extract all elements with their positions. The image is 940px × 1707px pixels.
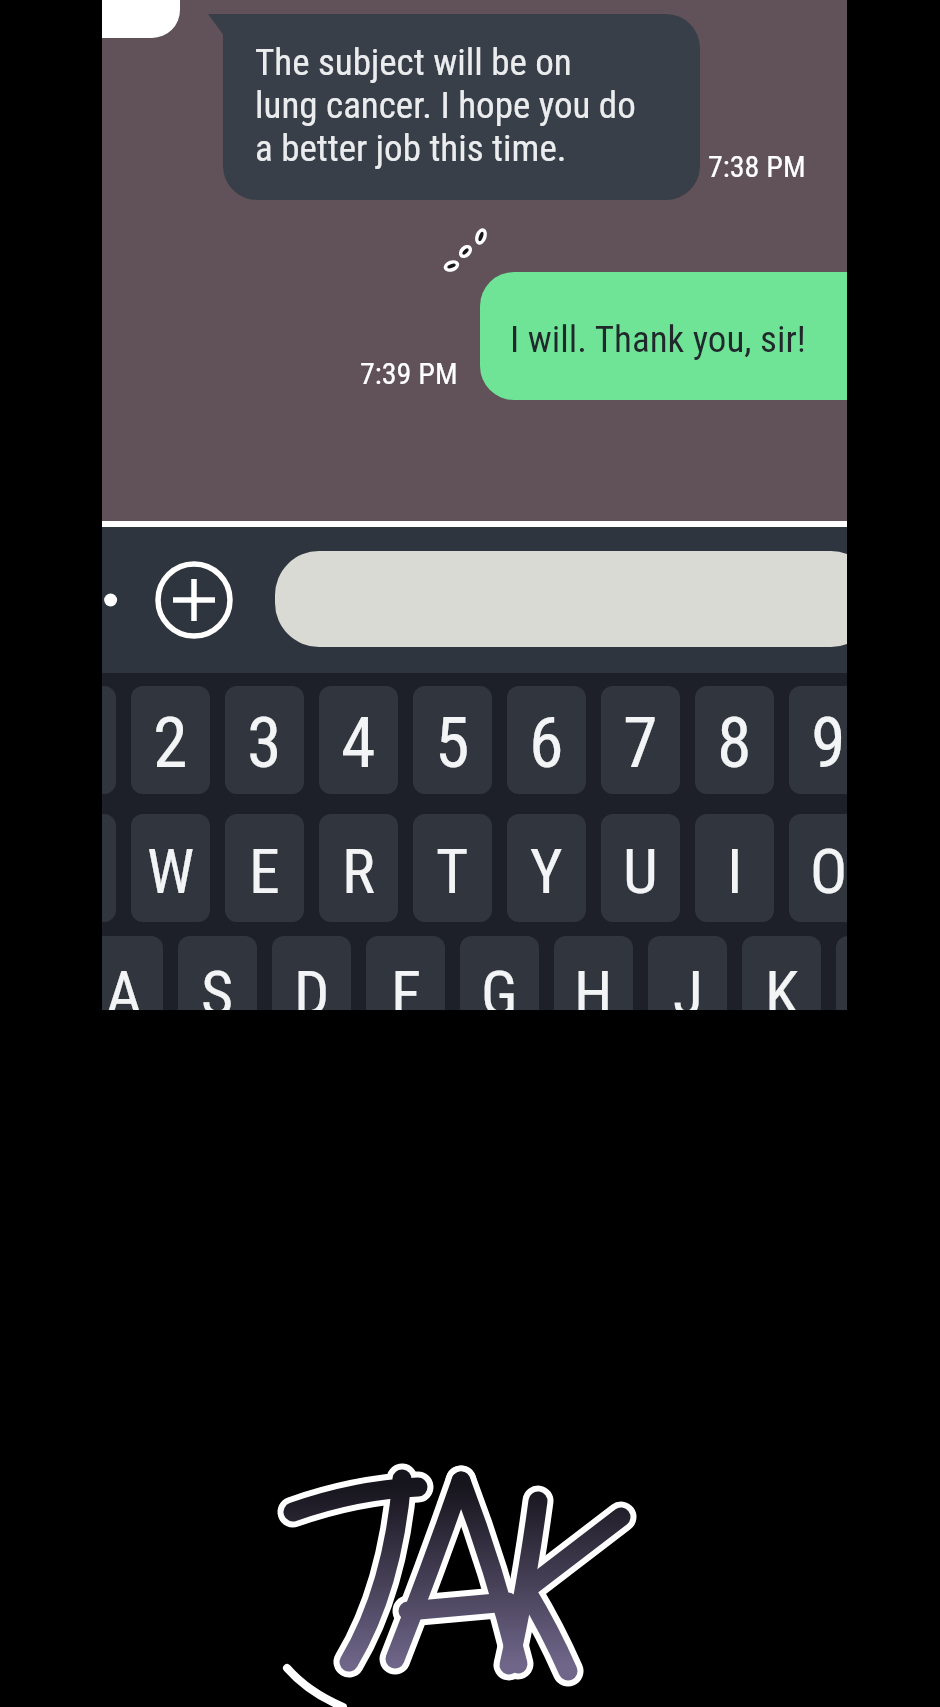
button[interactable]: 9 bbox=[789, 686, 847, 794]
button[interactable]: A bbox=[102, 936, 163, 1010]
button[interactable]: J bbox=[648, 936, 727, 1010]
staticText: R bbox=[342, 835, 375, 908]
button[interactable]: W bbox=[131, 814, 210, 922]
staticText: 7:39 PM bbox=[360, 356, 458, 391]
button[interactable]: K bbox=[742, 936, 821, 1010]
button[interactable]: I will. Thank you, sir! bbox=[480, 272, 847, 400]
staticText: I will. Thank you, sir! bbox=[510, 318, 806, 361]
staticText: G bbox=[481, 957, 518, 1010]
staticText: Y bbox=[530, 835, 563, 908]
staticText: 4 bbox=[341, 702, 376, 784]
staticText: T bbox=[436, 835, 469, 908]
button[interactable]: F bbox=[366, 936, 445, 1010]
button[interactable]: The subject will be on lung cancer. I ho… bbox=[223, 14, 700, 200]
staticText: 8 bbox=[717, 702, 752, 784]
button[interactable]: T bbox=[413, 814, 492, 922]
button[interactable]: 6 bbox=[507, 686, 586, 794]
staticText: I bbox=[727, 835, 743, 908]
staticText: O bbox=[810, 835, 847, 908]
staticText: 2 bbox=[153, 702, 188, 784]
staticText: 5 bbox=[435, 702, 470, 784]
staticText: E bbox=[249, 835, 280, 908]
staticText: A bbox=[106, 957, 142, 1010]
button[interactable]: R bbox=[319, 814, 398, 922]
staticText: U bbox=[623, 835, 658, 908]
staticText: The subject will be on lung cancer. I ho… bbox=[255, 41, 636, 170]
button[interactable]: Y bbox=[507, 814, 586, 922]
button[interactable]: 2 bbox=[131, 686, 210, 794]
button[interactable]: D bbox=[272, 936, 351, 1010]
button[interactable]: U bbox=[601, 814, 680, 922]
button[interactable]: 5 bbox=[413, 686, 492, 794]
button[interactable]: Q bbox=[102, 814, 116, 922]
staticText: 6 bbox=[529, 702, 564, 784]
staticText: S bbox=[201, 957, 234, 1010]
button[interactable]: 3 bbox=[225, 686, 304, 794]
staticText: K bbox=[765, 957, 799, 1010]
button[interactable] bbox=[275, 551, 847, 647]
button[interactable]: 8 bbox=[695, 686, 774, 794]
staticText: F bbox=[391, 957, 421, 1010]
button[interactable]: O bbox=[789, 814, 847, 922]
staticText: 7 bbox=[623, 702, 658, 784]
button[interactable]: L bbox=[836, 936, 847, 1010]
staticText: D bbox=[294, 957, 330, 1010]
button[interactable]: 4 bbox=[319, 686, 398, 794]
staticText: 3 bbox=[247, 702, 282, 784]
button[interactable] bbox=[154, 560, 234, 640]
staticText: 9 bbox=[811, 702, 846, 784]
staticText: H bbox=[574, 957, 613, 1010]
button[interactable]: 7 bbox=[601, 686, 680, 794]
button[interactable]: 1 bbox=[102, 686, 116, 794]
staticText: 7:38 PM bbox=[708, 149, 806, 184]
button[interactable]: E bbox=[225, 814, 304, 922]
button[interactable]: G bbox=[460, 936, 539, 1010]
button[interactable]: I bbox=[695, 814, 774, 922]
staticText: J bbox=[673, 957, 703, 1010]
staticText: W bbox=[147, 835, 195, 908]
button[interactable]: S bbox=[178, 936, 257, 1010]
button[interactable]: H bbox=[554, 936, 633, 1010]
